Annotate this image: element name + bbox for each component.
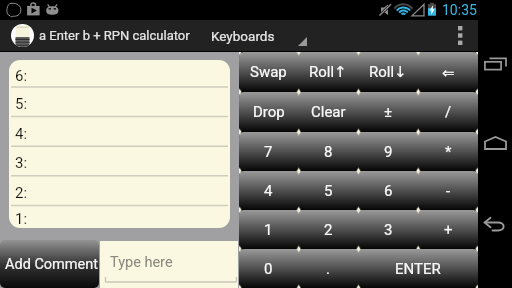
button[interactable]: App icon [11,24,34,47]
button[interactable]: 6: [9,60,230,87]
staticText: Type here [110,254,173,271]
button[interactable]: 4 [239,171,298,210]
staticText: ⇐ [442,64,455,81]
button[interactable]: ENTER [358,249,478,288]
button[interactable]: 6 [358,171,418,210]
button[interactable]: 8 [298,132,358,171]
button[interactable]: 0 [239,249,298,288]
button[interactable]: Type here [100,241,238,288]
staticText: 6: [15,67,28,85]
staticText: Roll↓ [369,63,407,81]
staticText: / [445,103,452,121]
button[interactable]: 5: [9,87,230,117]
staticText: Roll↑ [309,63,347,81]
button[interactable]: ± [358,92,418,132]
staticText: 1 [264,221,273,239]
staticText: 2 [324,221,333,239]
button[interactable]: 2 [298,210,358,249]
button[interactable]: Add Comment [0,240,99,288]
staticText: 4: [15,125,28,143]
button[interactable]: 3 [358,210,418,249]
staticText: 3: [15,154,28,172]
staticText: 4 [264,182,273,200]
staticText: 3 [384,221,393,239]
button[interactable]: More options [442,20,478,51]
button[interactable]: Swap [239,52,298,92]
staticText: 1: [15,210,28,228]
button[interactable]: - [418,171,478,210]
staticText: Drop [253,103,285,121]
staticText: Add Comment [5,256,98,273]
button[interactable]: Back [478,204,512,244]
button[interactable]: Drop [239,92,298,132]
button[interactable]: 2: [9,176,230,205]
button[interactable]: Recent apps [478,44,512,84]
staticText: 5: [15,95,28,113]
button[interactable]: Clear [298,92,358,132]
button[interactable]: 4: [9,117,230,146]
button[interactable]: 1: [9,205,230,228]
staticText: 6 [384,182,393,200]
staticText: ± [384,103,393,121]
staticText: 5 [324,182,333,200]
staticText: Swap [250,63,287,81]
staticText: 0 [264,260,273,278]
button[interactable]: 1 [239,210,298,249]
button[interactable]: 9 [358,132,418,171]
staticText: * [445,143,452,161]
button[interactable]: Roll↑ [298,52,358,92]
button[interactable]: * [418,132,478,171]
button[interactable]: + [418,210,478,249]
button[interactable]: / [418,92,478,132]
staticText: - [446,182,451,200]
staticText: 8 [324,143,333,161]
staticText: Keyboards [211,28,275,44]
button[interactable]: ⇐ [418,52,478,92]
staticText: 9 [384,143,393,161]
staticText: 7 [264,143,273,161]
staticText: a Enter b + RPN calculator [39,28,190,43]
button[interactable]: 5 [298,171,358,210]
staticText: + [444,221,453,239]
button[interactable]: 3: [9,146,230,176]
staticText: Clear [311,103,346,121]
staticText: 10:35 [442,2,477,18]
button[interactable]: Keyboards [211,20,307,51]
staticText: ENTER [395,260,441,278]
staticText: 2: [15,184,28,202]
button[interactable]: Home [478,123,512,163]
staticText: . [326,260,330,278]
button[interactable]: Roll↓ [358,52,418,92]
button[interactable]: 7 [239,132,298,171]
button[interactable]: . [298,249,358,288]
